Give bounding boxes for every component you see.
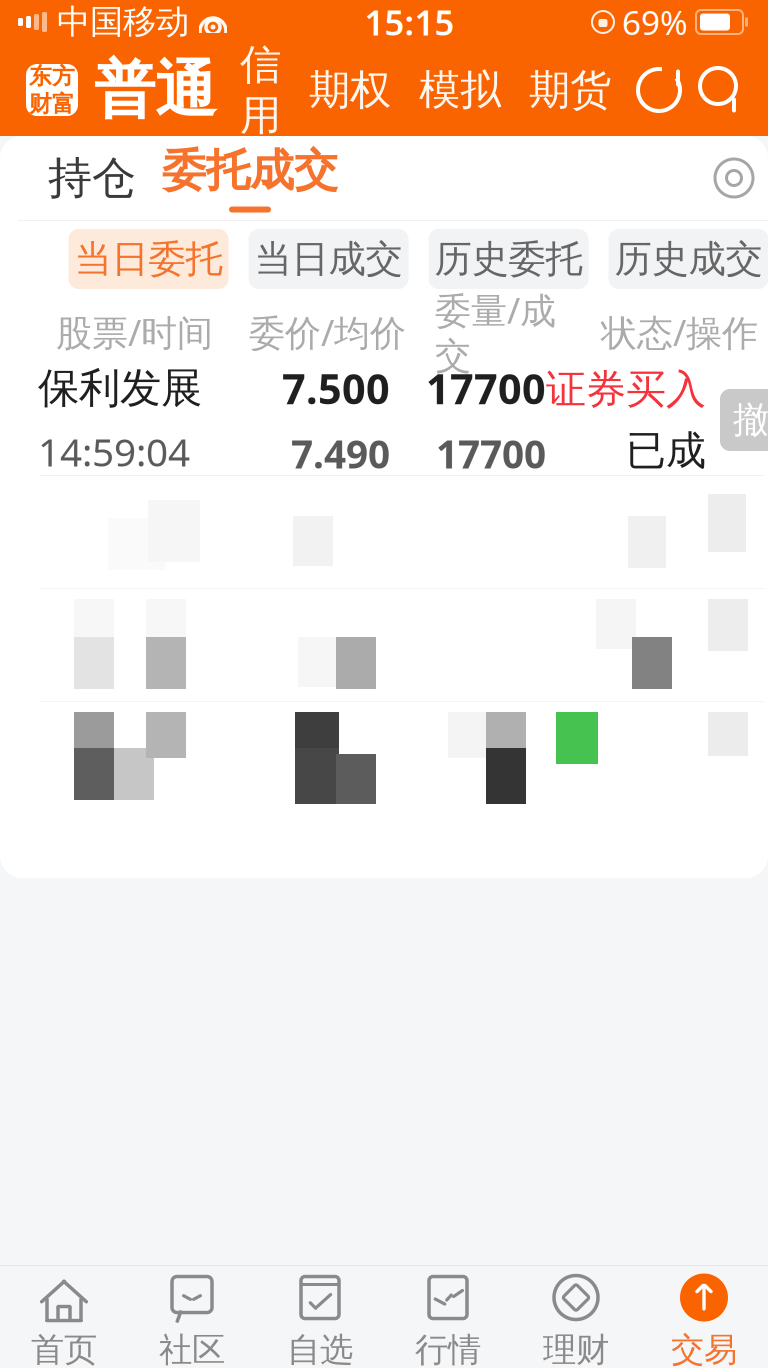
staticText: 7.500 <box>282 361 390 416</box>
staticText: 状态/操作 <box>601 308 758 356</box>
button[interactable]: 行情 <box>384 1272 512 1368</box>
staticText: 当日委托 <box>74 236 222 282</box>
button[interactable]: 理财 <box>512 1272 640 1368</box>
staticText: 东方 <box>29 62 75 90</box>
staticText: 证券买入 <box>546 365 706 414</box>
staticText: 期权 <box>309 65 391 115</box>
button[interactable]: 期货 <box>515 62 625 118</box>
staticText: 17700 <box>436 428 546 479</box>
staticText: 历史委托 <box>434 236 582 282</box>
staticText: 已成 <box>626 426 706 475</box>
staticText: 社区 <box>159 1329 225 1368</box>
button[interactable]: 委托成交 <box>162 143 338 212</box>
button[interactable]: 搜索 <box>696 65 746 115</box>
button[interactable]: 历史委托 <box>428 229 588 289</box>
button[interactable]: 东方财富 <box>26 64 78 116</box>
staticText: 7.490 <box>291 428 390 479</box>
staticText: 普通 <box>94 52 216 128</box>
staticText: 股票/时间 <box>56 308 213 356</box>
button[interactable]: 自选 <box>256 1272 384 1368</box>
button[interactable]: 信用 <box>226 62 295 118</box>
button[interactable]: 撤 <box>720 389 768 451</box>
staticText: 模拟 <box>419 65 501 115</box>
button[interactable]: 刷新 <box>634 65 684 115</box>
staticText: 首页 <box>31 1329 97 1368</box>
staticText: 撤 <box>733 398 768 442</box>
button[interactable]: 当日委托 <box>68 229 228 289</box>
button[interactable]: 模拟 <box>405 62 515 118</box>
staticText: 财富 <box>29 90 75 118</box>
staticText: 14:59:04 <box>38 426 190 477</box>
staticText: 15:15 <box>364 0 454 45</box>
button[interactable]: 当日成交 <box>248 229 408 289</box>
button[interactable]: 交易 <box>640 1272 768 1368</box>
staticText: 中国移动 <box>57 1 189 42</box>
staticText: 当日成交 <box>254 236 402 282</box>
staticText: 委量/成交 <box>435 286 556 378</box>
button[interactable]: 持仓 <box>48 151 162 205</box>
staticText: 17700 <box>426 361 546 416</box>
staticText: 期货 <box>529 65 611 115</box>
button[interactable]: 首页 <box>0 1272 128 1368</box>
staticText: 历史成交 <box>614 236 762 282</box>
button[interactable]: 社区 <box>128 1272 256 1368</box>
staticText: 保利发展 <box>38 363 202 414</box>
staticText: 持仓 <box>48 151 136 205</box>
staticText: 委价/均价 <box>249 308 406 356</box>
staticText: 委托成交 <box>162 143 338 197</box>
staticText: 信用 <box>240 39 281 141</box>
button[interactable]: 期权 <box>295 62 405 118</box>
staticText: 自选 <box>287 1329 353 1368</box>
button[interactable]: 普通 <box>78 52 226 128</box>
button[interactable]: 历史成交 <box>608 229 768 289</box>
staticText: 理财 <box>543 1329 609 1368</box>
staticText: 69% <box>622 0 688 44</box>
staticText: 行情 <box>415 1329 481 1368</box>
button[interactable]: 设置 <box>710 154 758 202</box>
staticText: 交易 <box>671 1329 737 1368</box>
